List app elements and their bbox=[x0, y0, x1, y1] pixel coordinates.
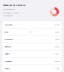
button[interactable]: Utilities bbox=[2, 50, 61, 57]
button[interactable]: Groceries bbox=[2, 21, 61, 28]
staticText: $188.25 bbox=[53, 45, 59, 48]
staticText: 7 categories bbox=[3, 14, 13, 17]
staticText: Groceries bbox=[4, 23, 12, 26]
staticText: $412.80 bbox=[53, 23, 59, 26]
staticText: November 1 – 30, 2024 bbox=[3, 12, 19, 14]
staticText: Health bbox=[4, 67, 9, 70]
staticText: Transport bbox=[4, 38, 13, 40]
button[interactable]: Shopping bbox=[2, 58, 61, 65]
staticText: Shopping bbox=[4, 60, 11, 62]
button[interactable]: Health bbox=[2, 65, 61, 72]
staticText: $233.90 bbox=[53, 60, 59, 62]
staticText: $74.00 bbox=[54, 67, 59, 70]
button[interactable]: Rent bbox=[2, 28, 61, 35]
staticText: Total this month bbox=[3, 8, 15, 10]
staticText: Rent bbox=[4, 31, 8, 33]
staticText: Utilities bbox=[4, 53, 9, 55]
staticText: Dining out bbox=[4, 45, 11, 48]
staticText: over bbox=[29, 31, 33, 33]
button[interactable]: Transport bbox=[2, 36, 61, 43]
staticText: $1,250 bbox=[54, 31, 59, 33]
button[interactable]: Dining out bbox=[2, 43, 61, 50]
staticText: Expenses at a glance bbox=[3, 3, 25, 6]
staticText: $96.40 bbox=[54, 38, 59, 40]
staticText: $142.10 bbox=[53, 53, 59, 55]
